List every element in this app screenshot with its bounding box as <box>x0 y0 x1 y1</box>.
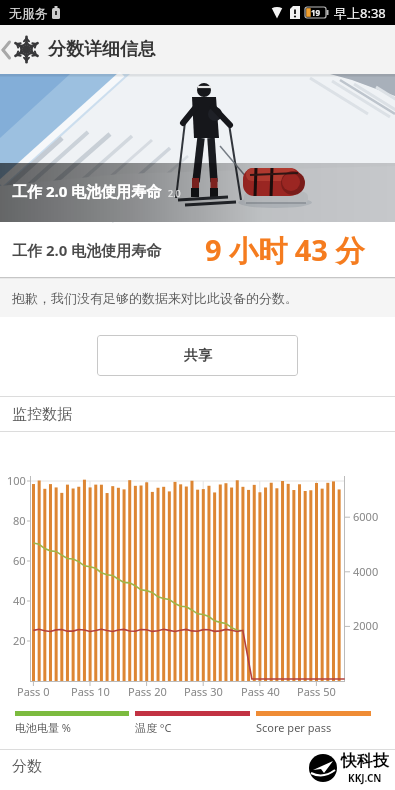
staticText: 工作 2.0 电池使用寿命 <box>12 240 162 260</box>
staticText: 温度 °C <box>135 720 172 735</box>
button[interactable]: 电池电量 % <box>15 711 129 735</box>
staticText: 4000 <box>353 564 379 579</box>
staticText: 共享 <box>184 347 212 365</box>
staticText: 60 <box>13 553 26 568</box>
staticText: 早上8:38 <box>334 4 386 22</box>
staticText: KKJ.CN <box>348 771 382 785</box>
staticText: 80 <box>13 513 26 528</box>
staticText: 9 小时 43 分 <box>205 230 365 270</box>
button[interactable]: 工作 2.0 电池使用寿命 <box>0 74 395 222</box>
staticText: 电池电量 % <box>15 720 72 735</box>
button[interactable]: 共享 <box>97 335 298 376</box>
staticText: 工作 2.0 电池使用寿命 <box>12 181 162 201</box>
staticText: 20 <box>13 633 26 648</box>
button[interactable]: 分数详细信息 <box>0 25 395 74</box>
button[interactable]: 温度 °C <box>135 711 250 735</box>
staticText: 40 <box>13 593 26 608</box>
staticText: Pass 30 <box>184 684 223 699</box>
staticText: 6000 <box>353 509 379 524</box>
button[interactable]: Score per pass <box>256 711 371 735</box>
staticText: Score per pass <box>256 720 332 735</box>
staticText: Pass 40 <box>241 684 280 699</box>
staticText: 快科技 <box>341 751 389 771</box>
staticText: 100 <box>7 473 26 488</box>
staticText: Pass 10 <box>71 684 110 699</box>
staticText: 监控数据 <box>12 405 72 424</box>
staticText: 2000 <box>353 618 379 633</box>
staticText: Pass 0 <box>17 684 50 699</box>
staticText: Pass 50 <box>297 684 336 699</box>
staticText: 无服务 <box>9 5 48 21</box>
staticText: 分数 <box>12 757 42 776</box>
staticText: 分数详细信息 <box>48 38 156 61</box>
staticText: Pass 20 <box>128 684 167 699</box>
staticText: 19 <box>311 7 321 18</box>
button[interactable]: 快科技 <box>308 751 389 785</box>
staticText: 2.0 <box>168 187 181 199</box>
staticText: 抱歉，我们没有足够的数据来对比此设备的分数。 <box>12 290 298 306</box>
